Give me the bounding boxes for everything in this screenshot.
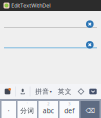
button[interactable]: 英文 [58,87,72,96]
button[interactable]: ' [17,101,37,118]
staticText: · [8,106,10,115]
button[interactable] [1,101,16,118]
staticText: 3 [68,101,70,106]
button[interactable]: 拼音 [35,87,52,96]
staticText: 英文 [58,87,72,96]
button[interactable]: Clear text [86,41,94,49]
button[interactable]: Move cursor [76,87,85,96]
staticText: abc [43,106,54,115]
button[interactable]: 2 [38,101,58,118]
button[interactable]: Clear text [86,20,94,28]
button[interactable]: 3 [59,101,79,118]
staticText: ▾ [50,89,52,94]
staticText: def [64,106,74,115]
staticText: 分词 [20,107,34,115]
button[interactable]: Hide keyboard [88,87,97,96]
staticText: ⌫ [85,107,94,114]
button[interactable]: Voice input [18,87,27,96]
button[interactable] [80,101,99,118]
button[interactable]: Input method settings [3,87,12,96]
staticText: ' [27,101,28,106]
staticText: 2 [47,101,49,106]
staticText: EditTextWithDel [11,2,50,9]
staticText: 拼音 [35,87,49,96]
